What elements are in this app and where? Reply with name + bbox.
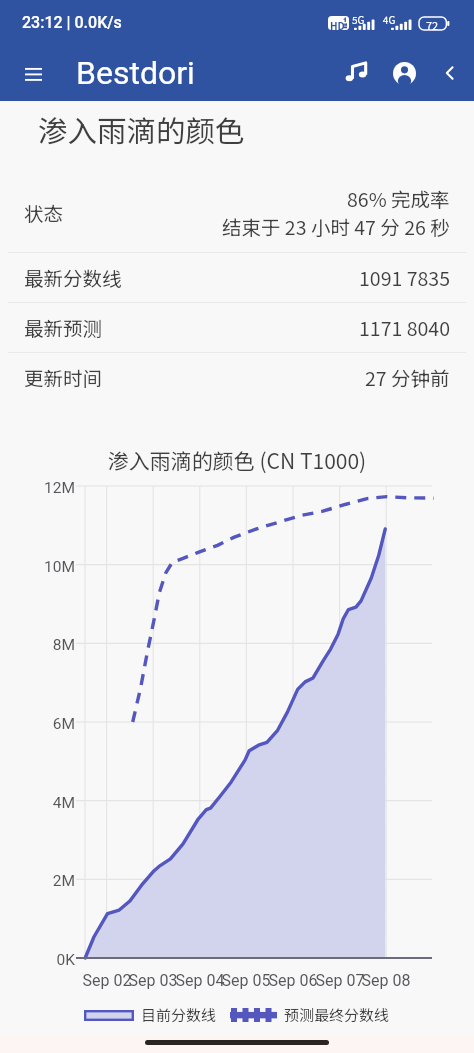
staticText: 渗入雨滴的颜色	[38, 108, 245, 151]
staticText: 渗入雨滴的颜色 (CN T1000)	[0, 445, 474, 475]
staticText: 72	[426, 17, 439, 30]
staticText: Sep 08	[356, 971, 416, 990]
staticText: 结束于 23 小时 47 分 26 秒	[222, 212, 450, 240]
button[interactable]: Account	[380, 49, 428, 97]
staticText: 更新时间	[24, 363, 103, 391]
staticText: 6M	[0, 715, 75, 733]
staticText: 12M	[0, 479, 75, 497]
button[interactable]: 更新时间	[0, 353, 474, 402]
staticText: 预测最终分数线	[284, 1004, 390, 1026]
staticText: 最新分数线	[24, 263, 122, 291]
staticText: Bestdori	[76, 54, 195, 92]
button[interactable]: Open navigation menu	[13, 53, 53, 93]
button[interactable]: Music	[332, 49, 380, 97]
staticText: Sep 02	[77, 971, 137, 990]
button[interactable]: 预测最终分数线	[230, 1000, 390, 1030]
staticText: 0K	[0, 951, 75, 969]
staticText: Sep 07	[310, 971, 370, 990]
staticText: 27 分钟前	[365, 363, 450, 391]
staticText: 目前分数线	[141, 1004, 217, 1026]
staticText: 状态	[24, 198, 64, 226]
staticText: 5G	[352, 12, 365, 26]
staticText: 8M	[0, 636, 75, 654]
staticText: 23:12 | 0.0K/s	[22, 13, 122, 32]
staticText: 2M	[0, 872, 75, 890]
staticText: 4G	[383, 12, 396, 26]
staticText: Sep 03	[123, 971, 183, 990]
staticText: 1091 7835	[359, 263, 450, 291]
button[interactable]: 状态	[0, 177, 474, 252]
staticText: Sep 06	[263, 971, 323, 990]
staticText: 最新预测	[24, 313, 103, 341]
staticText: HD	[330, 18, 345, 32]
staticText: 86% 完成率	[347, 184, 450, 212]
button[interactable]: 最新预测	[0, 303, 474, 352]
button[interactable]: Back	[428, 51, 472, 95]
staticText: 4M	[0, 794, 75, 812]
staticText: Sep 04	[170, 971, 230, 990]
button[interactable]: 目前分数线	[84, 1000, 217, 1030]
staticText: 1171 8040	[359, 313, 450, 341]
staticText: 10M	[0, 558, 75, 576]
button[interactable]: 最新分数线	[0, 253, 474, 302]
staticText: Sep 05	[216, 971, 276, 990]
